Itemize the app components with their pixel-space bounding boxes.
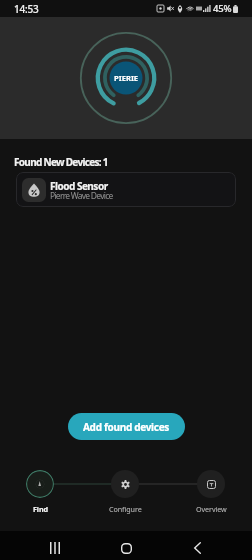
button[interactable]: Back — [187, 538, 207, 558]
staticText: Configure — [109, 504, 142, 514]
button[interactable]: Overview — [184, 470, 238, 514]
staticText: Found New Devices: 1 — [14, 155, 108, 169]
staticText: Pierre Wave Device — [50, 190, 113, 202]
button[interactable]: Find — [13, 470, 67, 514]
staticText: Find — [33, 504, 48, 514]
staticText: Flood Sensor — [50, 179, 108, 193]
staticText: PIERIE — [114, 73, 139, 83]
button[interactable]: Recents — [45, 538, 65, 558]
button[interactable]: Home — [116, 538, 136, 558]
button[interactable]: Flood Sensor — [16, 172, 236, 207]
staticText: Add found devices — [83, 420, 170, 434]
button[interactable]: Configure — [98, 470, 152, 514]
button[interactable]: Add found devices — [68, 413, 185, 440]
staticText: Overview — [196, 504, 227, 514]
staticText: 45% — [213, 2, 232, 15]
staticText: 14:53 — [14, 2, 39, 16]
